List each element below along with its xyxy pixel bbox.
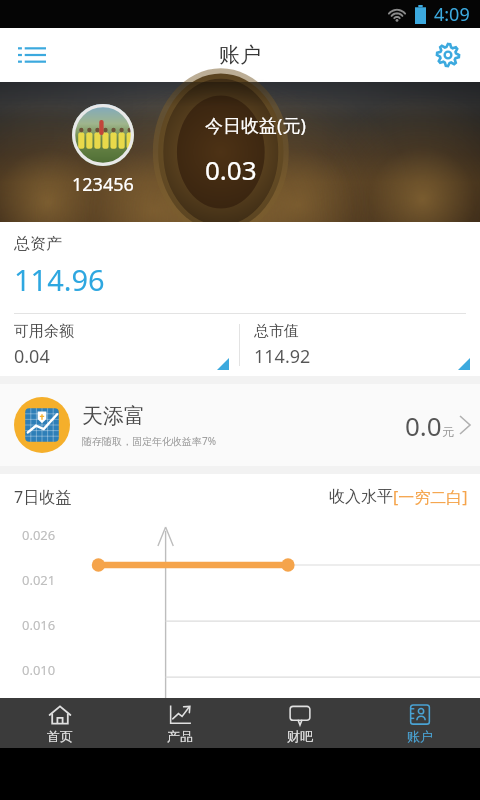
button[interactable]: Avatar xyxy=(72,104,134,166)
staticText: 7日收益 xyxy=(14,486,72,508)
staticText: 天添富 xyxy=(82,403,145,429)
staticText: 产品 xyxy=(167,728,193,744)
staticText: 114.96 xyxy=(14,260,105,299)
staticText: 可用余额 xyxy=(14,322,74,341)
staticText: 账户 xyxy=(219,42,261,68)
staticText: 114.92 xyxy=(254,344,311,369)
staticText: 财吧 xyxy=(287,728,313,744)
staticText: [一穷二白] xyxy=(393,486,468,508)
staticText: 收入水平 xyxy=(329,487,393,507)
staticText: 总市值 xyxy=(254,322,299,341)
button[interactable]: Settings xyxy=(424,31,472,79)
staticText: 随存随取，固定年化收益率7% xyxy=(82,434,217,448)
staticText: 首页 xyxy=(47,728,73,744)
button[interactable]: 财吧 xyxy=(240,698,360,748)
button[interactable]: 天添富 xyxy=(0,384,480,466)
button[interactable]: 产品 xyxy=(120,698,240,748)
staticText: 123456 xyxy=(72,172,134,197)
staticText: 今日收益(元) xyxy=(205,113,306,138)
staticText: 0.03 xyxy=(205,152,257,187)
staticText: 总资产 xyxy=(14,234,62,254)
staticText: 0.0 xyxy=(405,408,442,443)
staticText: 0.026 xyxy=(22,526,56,544)
button[interactable]: Menu xyxy=(8,31,56,79)
button[interactable]: 账户 xyxy=(360,698,480,748)
staticText: 0.016 xyxy=(22,616,56,634)
staticText: 4:09 xyxy=(434,2,470,27)
button[interactable]: 可用余额 xyxy=(0,314,239,376)
staticText: 0.010 xyxy=(22,661,56,679)
staticText: 0.021 xyxy=(22,571,56,589)
button[interactable]: 首页 xyxy=(0,698,120,748)
staticText: 元 xyxy=(442,424,454,439)
staticText: 0.04 xyxy=(14,344,50,369)
button[interactable]: 总市值 xyxy=(240,314,480,376)
staticText: 账户 xyxy=(407,728,433,744)
